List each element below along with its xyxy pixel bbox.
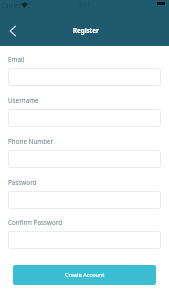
staticText: Phone Number xyxy=(8,137,54,146)
button[interactable]: Back xyxy=(2,20,24,42)
staticText: 9:41 xyxy=(79,1,90,8)
button[interactable] xyxy=(8,150,161,168)
staticText: Password xyxy=(8,178,37,187)
staticText: Carrier xyxy=(1,1,22,9)
button[interactable] xyxy=(8,68,161,86)
staticText: Create Account xyxy=(65,271,105,278)
button[interactable] xyxy=(8,191,161,209)
staticText: Confirm Password xyxy=(8,218,63,227)
staticText: Register xyxy=(73,26,99,34)
staticText: Email xyxy=(8,55,25,64)
staticText: Username xyxy=(8,96,39,105)
button[interactable] xyxy=(8,231,161,249)
button[interactable] xyxy=(8,109,161,127)
button[interactable]: Create Account xyxy=(13,265,156,285)
